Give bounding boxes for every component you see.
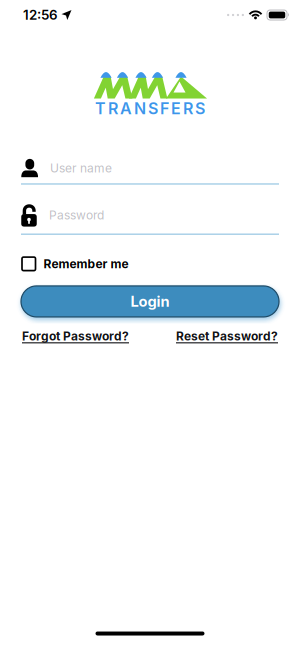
- staticText: F: [160, 99, 169, 118]
- button[interactable]: Forgot Password?: [22, 329, 129, 343]
- button[interactable]: Password: [0, 204, 300, 235]
- staticText: User name: [50, 161, 112, 175]
- staticText: Remember me: [43, 257, 128, 271]
- button[interactable]: Remember me: [0, 257, 300, 271]
- staticText: Reset Password?: [176, 329, 278, 343]
- staticText: R: [183, 99, 193, 118]
- staticText: Password: [49, 208, 104, 222]
- button[interactable]: User name: [0, 159, 300, 185]
- staticText: S: [195, 99, 205, 118]
- staticText: N: [134, 99, 146, 118]
- staticText: Login: [130, 293, 169, 310]
- staticText: R: [108, 99, 118, 118]
- staticText: T: [95, 99, 106, 118]
- button[interactable]: Login: [0, 286, 300, 317]
- staticText: E: [171, 99, 181, 118]
- staticText: Forgot Password?: [22, 329, 129, 343]
- button[interactable]: Reset Password?: [176, 329, 278, 343]
- staticText: A: [120, 99, 132, 118]
- staticText: S: [148, 99, 158, 118]
- staticText: 12:56: [23, 7, 58, 23]
